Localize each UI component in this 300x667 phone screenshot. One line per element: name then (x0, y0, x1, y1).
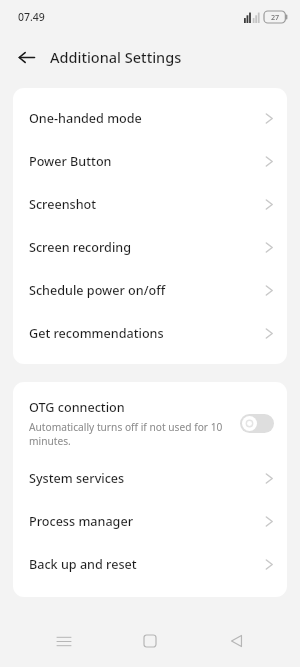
button[interactable]: One-handed mode (13, 97, 287, 140)
button[interactable]: Schedule power on/off (13, 269, 287, 312)
button[interactable]: Screenshot (13, 183, 287, 226)
button[interactable]: Back (9, 40, 43, 74)
button[interactable]: Process manager (13, 500, 287, 543)
button[interactable]: Back up and reset (13, 543, 287, 586)
button[interactable]: OTG connection toggle (240, 414, 274, 433)
staticText: 07.49 (18, 10, 45, 24)
staticText: Power Button (29, 153, 265, 170)
button[interactable]: OTG connection (13, 390, 287, 457)
staticText: 27 (271, 12, 280, 22)
staticText: Screenshot (29, 196, 265, 213)
staticText: Get recommendations (29, 325, 265, 342)
button[interactable]: Home (128, 619, 172, 663)
button[interactable]: Power Button (13, 140, 287, 183)
staticText: System services (29, 470, 265, 487)
button[interactable]: Back (214, 619, 258, 663)
staticText: Automatically turns off if not used for … (29, 420, 232, 448)
staticText: Additional Settings (50, 47, 182, 67)
button[interactable]: Screen recording (13, 226, 287, 269)
button[interactable]: Recent apps (42, 619, 86, 663)
staticText: One-handed mode (29, 110, 265, 127)
staticText: Process manager (29, 513, 265, 530)
button[interactable]: Get recommendations (13, 312, 287, 355)
staticText: OTG connection (29, 399, 125, 416)
button[interactable]: System services (13, 457, 287, 500)
staticText: Back up and reset (29, 556, 265, 573)
staticText: Screen recording (29, 239, 265, 256)
staticText: Schedule power on/off (29, 282, 265, 299)
